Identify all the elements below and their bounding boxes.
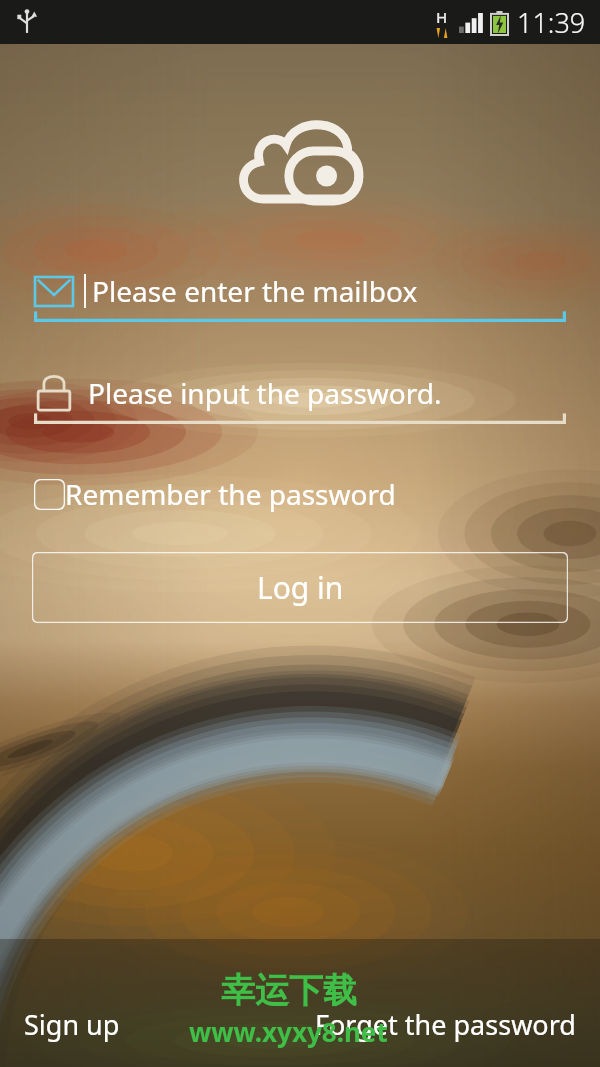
button[interactable]: Forget the password xyxy=(315,1000,576,1049)
staticText: www.xyxy8.net xyxy=(189,1014,388,1049)
staticText: Please enter the mailbox xyxy=(92,272,418,310)
staticText: Please input the password. xyxy=(88,374,442,412)
staticText: Forget the password xyxy=(315,1006,576,1043)
staticText: 11:39 xyxy=(517,4,586,41)
other: App logo xyxy=(230,107,370,207)
button[interactable]: Log in xyxy=(32,552,568,623)
button[interactable]: Sign up xyxy=(24,1000,120,1049)
staticText: Log in xyxy=(257,567,344,608)
staticText: Remember the password xyxy=(65,475,396,513)
button[interactable]: Remember the password xyxy=(34,475,396,513)
staticText: H xyxy=(436,7,448,27)
button[interactable]: Email address field xyxy=(34,267,566,327)
button[interactable]: Password field xyxy=(34,369,566,429)
staticText: Sign up xyxy=(24,1006,120,1043)
staticText: 幸运下载 xyxy=(221,969,357,1012)
